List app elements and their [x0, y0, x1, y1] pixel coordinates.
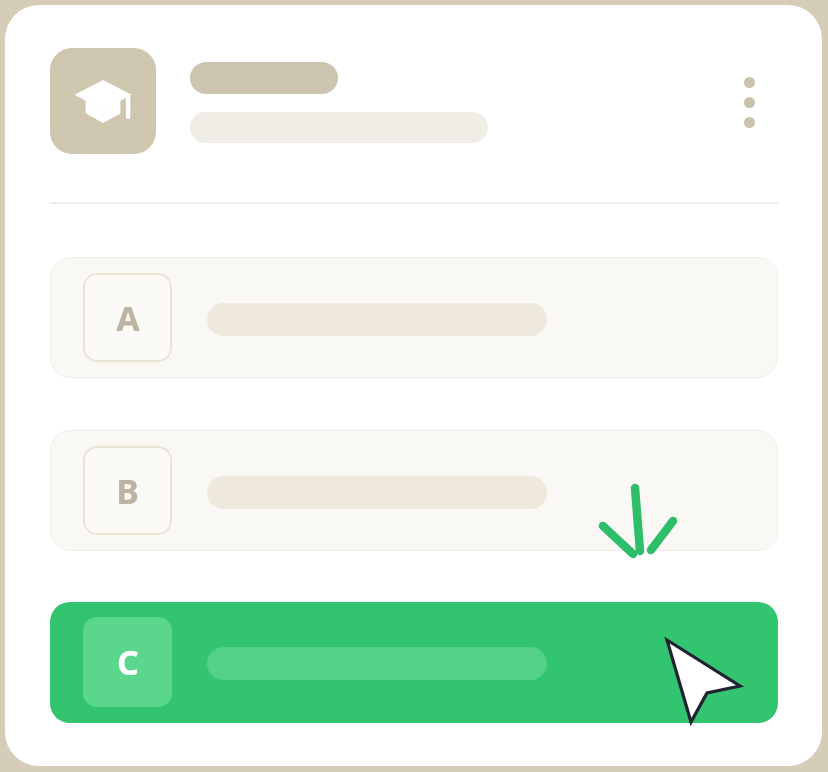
button[interactable]: B [50, 430, 778, 551]
button[interactable]: C [50, 602, 778, 723]
staticText: B [116, 468, 139, 514]
button[interactable]: More options [717, 67, 781, 137]
staticText: A [116, 295, 140, 341]
button[interactable]: Course [50, 48, 156, 154]
staticText: C [117, 639, 139, 685]
button[interactable]: A [50, 257, 778, 378]
